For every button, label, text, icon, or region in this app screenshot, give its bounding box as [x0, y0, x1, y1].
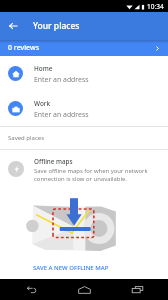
- button[interactable]: Back: [9, 279, 53, 300]
- staticText: Enter an address: [34, 75, 89, 84]
- button[interactable]: Home: [0, 56, 168, 91]
- staticText: Offline maps: [34, 157, 73, 166]
- staticText: SAVE A NEW OFFLINE MAP: [33, 264, 109, 272]
- button[interactable]: Work: [0, 91, 168, 126]
- button[interactable]: 0 reviews: [0, 40, 168, 56]
- button[interactable]: Recent apps: [115, 279, 159, 300]
- staticText: 0 reviews: [8, 43, 40, 53]
- staticText: 10:34: [147, 2, 164, 11]
- staticText: Enter an address: [34, 110, 89, 119]
- button[interactable]: Home: [62, 279, 106, 300]
- staticText: Work: [34, 99, 51, 108]
- staticText: Saved places: [8, 134, 45, 142]
- staticText: Save offline maps for when your network …: [34, 167, 162, 183]
- staticText: Home: [34, 64, 53, 73]
- staticText: Your places: [33, 20, 80, 32]
- button[interactable]: SAVE A NEW OFFLINE MAP: [29, 261, 113, 275]
- button[interactable]: Back: [0, 12, 26, 40]
